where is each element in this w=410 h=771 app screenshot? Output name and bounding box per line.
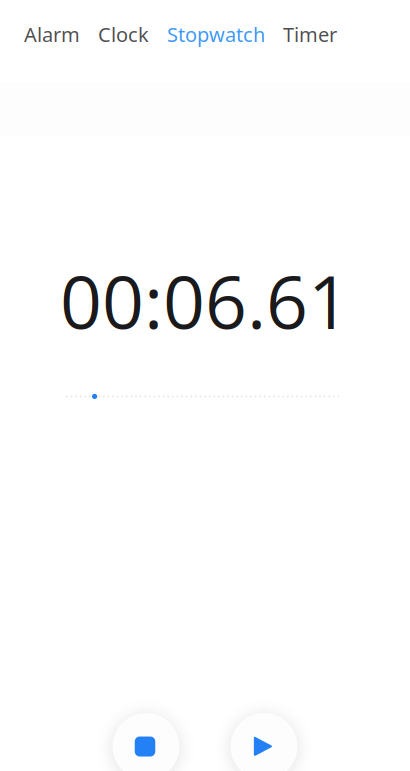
button[interactable]: Stop: [112, 713, 179, 771]
button[interactable]: Alarm: [19, 9, 85, 60]
button[interactable]: Clock: [93, 9, 154, 60]
staticText: Clock: [98, 21, 149, 48]
button[interactable]: Stopwatch: [162, 9, 270, 60]
button[interactable]: Timer: [278, 9, 342, 60]
button[interactable]: Start: [230, 713, 297, 771]
staticText: Alarm: [24, 21, 80, 48]
staticText: 00:06.61: [60, 251, 350, 350]
staticText: Stopwatch: [167, 21, 265, 48]
staticText: Timer: [283, 21, 337, 48]
